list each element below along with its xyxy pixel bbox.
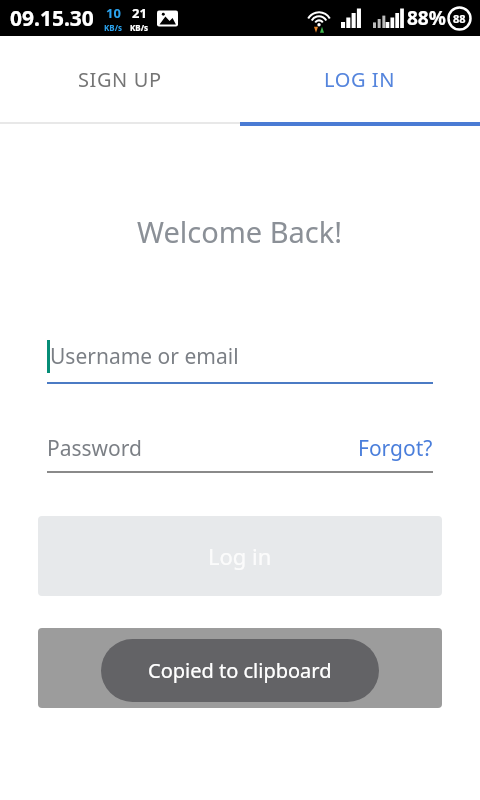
button[interactable]: LOG IN — [240, 36, 480, 122]
button[interactable]: Password — [47, 434, 358, 463]
staticText: Log in with Facebook — [156, 654, 365, 683]
staticText: 88 — [453, 11, 466, 26]
staticText: Forgot? — [358, 434, 433, 463]
staticText: Password — [47, 434, 142, 463]
staticText: 88% — [407, 5, 446, 31]
staticText: SIGN UP — [78, 66, 162, 93]
staticText: Username or email — [50, 342, 239, 371]
button[interactable]: Forgot? — [358, 434, 433, 463]
staticText: 10 — [106, 4, 121, 22]
staticText: Copied to clipboard — [148, 657, 332, 684]
staticText: 21 — [132, 4, 147, 22]
staticText: Log in — [208, 541, 272, 571]
button[interactable]: SIGN UP — [0, 36, 240, 122]
staticText: LOG IN — [324, 66, 396, 93]
staticText: Welcome Back! — [137, 212, 343, 251]
staticText: 09.15.30 — [10, 4, 94, 33]
staticText: KB/s — [130, 22, 148, 33]
staticText: KB/s — [104, 22, 122, 33]
button[interactable]: Username or email — [47, 336, 433, 384]
button[interactable]: Log in with Facebook — [38, 628, 442, 708]
